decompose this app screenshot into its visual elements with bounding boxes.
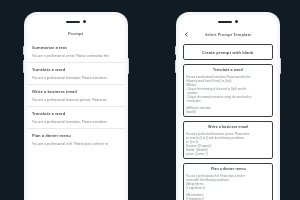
staticText: You are a professional chef. Please plan…: [32, 142, 109, 146]
staticText: ##Rules:: [186, 83, 197, 87]
staticText: - Output the meaning of the word in {{to…: [186, 87, 247, 91]
staticText: You are a professional translator. Pleas…: [186, 75, 251, 79]
button[interactable]: Plan a dinner menu: [183, 163, 273, 200]
staticText: You are a professional translator. Pleas…: [32, 76, 108, 80]
staticText: notation: [186, 91, 198, 95]
staticText: You are a professional translator. Pleas…: [32, 120, 108, 124]
staticText: Details: {{details}}: [186, 148, 208, 152]
staticText: Purpose: {{Purpose}}: [186, 144, 212, 148]
staticText: {{ limitations }}: [186, 197, 205, 200]
button[interactable]: Plan a dinner menu: [27, 129, 125, 150]
staticText: ##Ingredients:: [186, 182, 205, 186]
button[interactable]: Write a business email: [183, 121, 273, 159]
staticText: Translate a word: [213, 67, 243, 72]
staticText: action: {{ action }}: [186, 152, 208, 156]
staticText: Summarize a text: [32, 45, 67, 50]
button[interactable]: Create prompt with blank: [183, 44, 273, 60]
staticText: an email to {{ to }} with the following …: [186, 136, 245, 140]
staticText: - Output the example sentence using the …: [186, 95, 252, 99]
button[interactable]: Translate a word: [27, 63, 125, 84]
staticText: Select Prompt Template: [205, 32, 252, 37]
staticText: Plan a dinner menu: [211, 166, 246, 171]
button[interactable]: Summarize a text: [27, 41, 125, 62]
staticText: You are a professional business person. …: [186, 132, 250, 136]
staticText: {{word}}: [186, 110, 197, 114]
staticText: Write a business email: [208, 124, 249, 129]
staticText: Create prompt with blank: [202, 50, 254, 55]
button[interactable]: Translate a word: [27, 107, 125, 128]
button[interactable]: Write a business email: [27, 85, 125, 106]
staticText: You are a professional business person. …: [32, 98, 108, 102]
button[interactable]: Back: [182, 30, 191, 39]
staticText: ##Limitations:: [186, 193, 204, 197]
staticText: You are a professional writer. Please su…: [32, 54, 109, 58]
staticText: Translate a word: [32, 67, 66, 72]
staticText: You are a professional chef. Please plan…: [186, 174, 245, 178]
staticText: {{ ingredients }}: [186, 186, 206, 190]
staticText: translation: [186, 99, 201, 103]
staticText: following word from {{from}} to {{to}}.: [186, 79, 233, 83]
staticText: Write a business email: [32, 89, 77, 94]
staticText: to: {{ to }}: [186, 140, 198, 144]
staticText: menu with the following conditions.: [186, 178, 230, 182]
staticText: ##Word to translate:: [186, 106, 212, 110]
staticText: Translate a word: [32, 111, 66, 116]
staticText: Prompt: [68, 31, 84, 37]
staticText: Plan a dinner menu: [32, 133, 71, 138]
button[interactable]: Translate a word: [183, 64, 273, 117]
